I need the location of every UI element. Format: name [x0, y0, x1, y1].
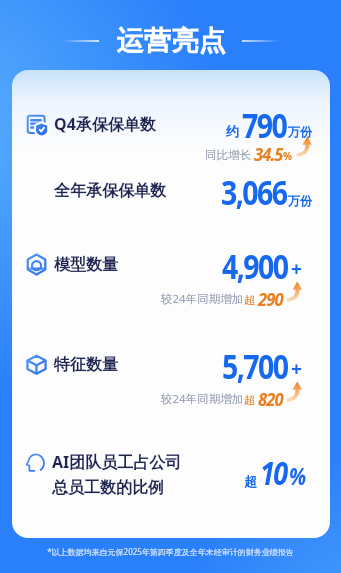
staticText: 同比增长 [205, 148, 251, 162]
staticText: 34.5 [254, 141, 283, 165]
staticText: % [283, 149, 293, 163]
staticText: 总员工数的比例 [52, 478, 164, 498]
staticText: 4,900 [222, 244, 288, 289]
button[interactable]: AI团队员工占公司 [26, 451, 330, 498]
staticText: 较24年同期增加 [161, 391, 244, 407]
staticText: 万份 [288, 124, 312, 139]
staticText: 3,066 [221, 170, 287, 215]
staticText: % [289, 460, 305, 492]
staticText: 820 [258, 386, 283, 410]
staticText: 290 [258, 286, 283, 310]
staticText: AI团队员工占公司 [52, 451, 182, 473]
staticText: 特征数量 [54, 355, 118, 375]
staticText: 较24年同期增加 [161, 291, 244, 307]
staticText: 运营亮点 [116, 24, 226, 58]
staticText: 790 [242, 103, 287, 148]
staticText: 全年承保保单数 [54, 181, 166, 201]
staticText: 超 [244, 293, 256, 307]
staticText: + [291, 256, 302, 282]
staticText: 约 [226, 123, 239, 139]
button[interactable]: 模型数量 [26, 254, 330, 275]
button[interactable]: 特征数量 [26, 354, 330, 375]
button[interactable]: 全年承保保单数 [54, 181, 330, 201]
staticText: 超 [244, 473, 257, 489]
staticText: + [291, 356, 302, 382]
staticText: 万份 [288, 193, 312, 208]
staticText: Q4承保保单数 [54, 113, 156, 135]
staticText: 5,700 [222, 344, 288, 389]
staticText: 10 [260, 451, 287, 494]
staticText: *以上数据均来自元保2025年第四季度及全年未经审计的财务业绩报告 [47, 546, 294, 557]
button[interactable]: Q4承保保单数 [26, 113, 330, 135]
staticText: 模型数量 [54, 255, 118, 275]
staticText: 超 [244, 393, 256, 407]
